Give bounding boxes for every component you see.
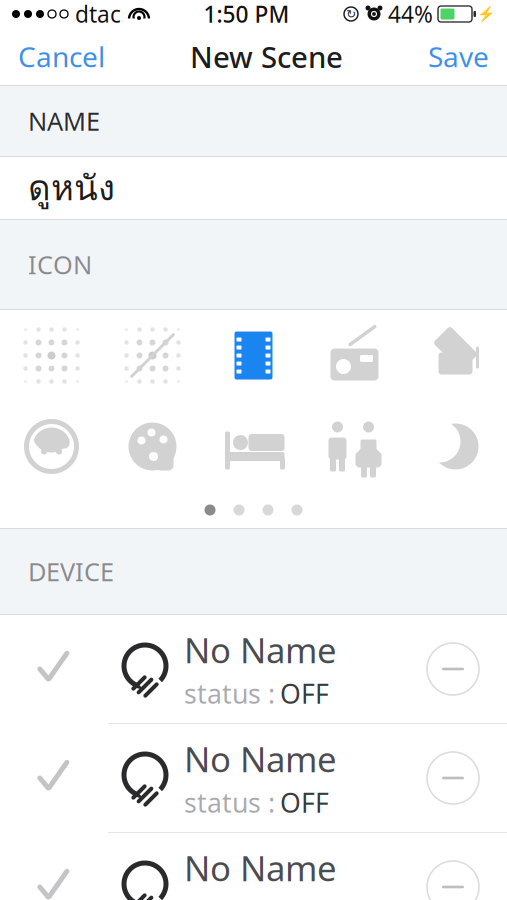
staticText: ↻ <box>346 7 356 21</box>
button[interactable]: Movie <box>203 310 304 401</box>
button[interactable]: Night <box>405 401 506 492</box>
button[interactable]: Face <box>1 401 102 492</box>
staticText: No Name <box>184 845 337 891</box>
staticText: Cancel <box>18 38 105 75</box>
staticText: ⚡ <box>477 6 495 22</box>
button[interactable]: Dots off <box>102 310 203 401</box>
button[interactable]: Dots <box>1 310 102 401</box>
staticText: status : <box>184 785 275 820</box>
staticText: 44% <box>388 0 433 29</box>
staticText: OFF <box>280 676 329 711</box>
button[interactable]: Save <box>410 28 507 85</box>
staticText: dtac <box>75 0 121 29</box>
button[interactable]: Radio <box>304 310 405 401</box>
button[interactable]: Art <box>102 401 203 492</box>
button[interactable]: No Name <box>0 724 507 832</box>
staticText: ดูหนัง <box>28 161 115 215</box>
staticText: No Name <box>184 736 337 782</box>
staticText: status : <box>184 676 275 711</box>
staticText: OFF <box>280 785 329 820</box>
button[interactable]: Study <box>405 310 506 401</box>
button[interactable]: Cancel <box>0 28 123 85</box>
staticText: New Scene <box>190 37 343 76</box>
staticText: Save <box>428 38 489 75</box>
staticText: ICON <box>28 248 92 281</box>
staticText: DEVICE <box>28 555 114 588</box>
button[interactable]: Sleep <box>203 401 304 492</box>
button[interactable]: No Name <box>0 615 507 723</box>
staticText: No Name <box>184 627 337 673</box>
staticText: NAME <box>28 104 100 138</box>
staticText: 1:50 PM <box>203 0 289 29</box>
button[interactable]: Restroom <box>304 401 405 492</box>
button[interactable]: No Name <box>0 833 507 900</box>
button[interactable]: ดูหนัง <box>0 157 507 219</box>
